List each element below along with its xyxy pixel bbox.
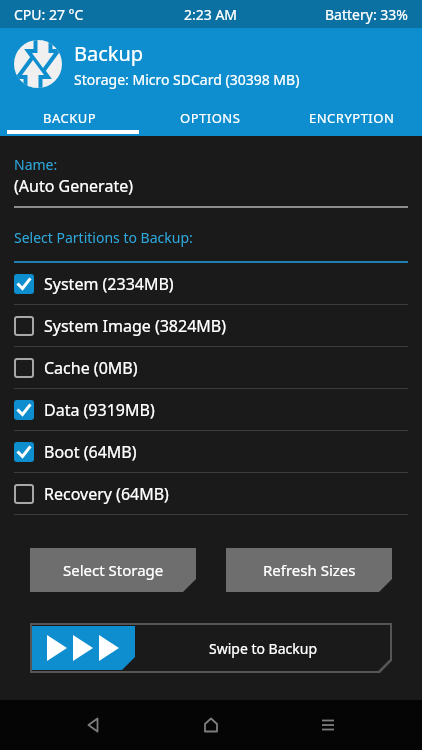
staticText: Select Storage	[63, 560, 164, 580]
staticText: Data (9319MB)	[44, 399, 155, 421]
button[interactable]: BACKUP	[0, 100, 140, 136]
staticText: Cache (0MB)	[44, 357, 138, 379]
staticText: Refresh Sizes	[263, 560, 356, 580]
button[interactable]: Select Storage	[30, 548, 196, 592]
button[interactable]: Refresh Sizes	[226, 548, 392, 592]
staticText: OPTIONS	[180, 109, 241, 127]
button[interactable]: Recovery (64MB)	[14, 473, 408, 514]
button[interactable]	[36, 700, 152, 750]
staticText: Name:	[14, 155, 58, 174]
staticText: CPU: 27 °C	[14, 5, 84, 24]
staticText: Swipe to Backup	[209, 639, 318, 658]
staticText: 2:23 AM	[184, 5, 238, 24]
button[interactable]: Data (9319MB)	[14, 389, 408, 430]
button[interactable]	[152, 700, 269, 750]
button[interactable]: System Image (3824MB)	[14, 305, 408, 346]
staticText: Select Partitions to Backup:	[14, 228, 193, 247]
button[interactable]: Cache (0MB)	[14, 347, 408, 388]
button[interactable]	[269, 700, 386, 750]
staticText: ENCRYPTION	[309, 109, 395, 127]
staticText: Backup	[74, 40, 144, 67]
staticText: Recovery (64MB)	[44, 483, 169, 505]
button[interactable]: Boot (64MB)	[14, 431, 408, 472]
staticText: System Image (3824MB)	[44, 315, 227, 337]
staticText: BACKUP	[43, 109, 97, 127]
staticText: Boot (64MB)	[44, 441, 137, 463]
button[interactable]: System (2334MB)	[14, 263, 408, 304]
button[interactable]: ENCRYPTION	[281, 100, 422, 136]
staticText: System (2334MB)	[44, 273, 174, 295]
button[interactable]: Swipe to Backup	[30, 623, 392, 673]
staticText: Storage: Micro SDCard (30398 MB)	[74, 70, 300, 89]
staticText: Battery: 33%	[325, 5, 408, 24]
button[interactable]: (Auto Generate)	[14, 175, 408, 197]
button[interactable]: OPTIONS	[140, 100, 281, 136]
